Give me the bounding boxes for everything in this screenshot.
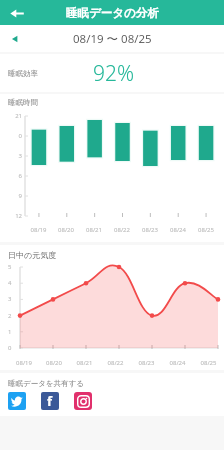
staticText: 5 bbox=[8, 263, 12, 271]
button[interactable]: Share on Facebook bbox=[41, 392, 59, 410]
staticText: f bbox=[47, 392, 53, 410]
button[interactable]: Share on Instagram bbox=[74, 392, 92, 410]
staticText: 12 bbox=[8, 212, 22, 220]
staticText: 日中の元気度 bbox=[8, 250, 57, 260]
staticText: 2 bbox=[8, 312, 12, 320]
staticText: 1 bbox=[8, 328, 12, 336]
staticText: 9 bbox=[8, 192, 22, 200]
staticText: 0 bbox=[8, 132, 22, 140]
staticText: 6 bbox=[8, 172, 22, 180]
staticText: 4 bbox=[8, 279, 12, 287]
staticText: 08/19 bbox=[25, 226, 52, 234]
staticText: 08/21 bbox=[80, 226, 108, 234]
button[interactable]: Back bbox=[6, 2, 28, 24]
staticText: 08/20 bbox=[39, 359, 69, 367]
staticText: 睡眠時間 bbox=[8, 98, 38, 107]
staticText: 08/19 〜 08/25 bbox=[73, 31, 152, 47]
staticText: 08/23 bbox=[136, 226, 164, 234]
button[interactable]: Previous week bbox=[6, 30, 24, 48]
staticText: 08/21 bbox=[69, 359, 100, 367]
staticText: 08/25 bbox=[192, 226, 220, 234]
staticText: 0 bbox=[8, 344, 12, 352]
staticText: 3 bbox=[8, 152, 22, 160]
staticText: 08/19 bbox=[9, 359, 39, 367]
staticText: 21 bbox=[8, 112, 22, 120]
staticText: 08/24 bbox=[162, 359, 193, 367]
staticText: 睡眠データを共有する bbox=[8, 379, 84, 388]
staticText: 08/22 bbox=[100, 359, 131, 367]
staticText: 08/24 bbox=[164, 226, 192, 234]
staticText: 3 bbox=[8, 295, 12, 303]
staticText: 睡眠効率 bbox=[8, 69, 38, 78]
staticText: 08/20 bbox=[52, 226, 80, 234]
staticText: 92% bbox=[93, 59, 135, 88]
staticText: 睡眠データの分析 bbox=[66, 6, 159, 20]
button[interactable]: Share on Twitter bbox=[8, 392, 26, 410]
staticText: 08/22 bbox=[108, 226, 136, 234]
staticText: 08/25 bbox=[193, 359, 224, 367]
staticText: 08/23 bbox=[131, 359, 162, 367]
